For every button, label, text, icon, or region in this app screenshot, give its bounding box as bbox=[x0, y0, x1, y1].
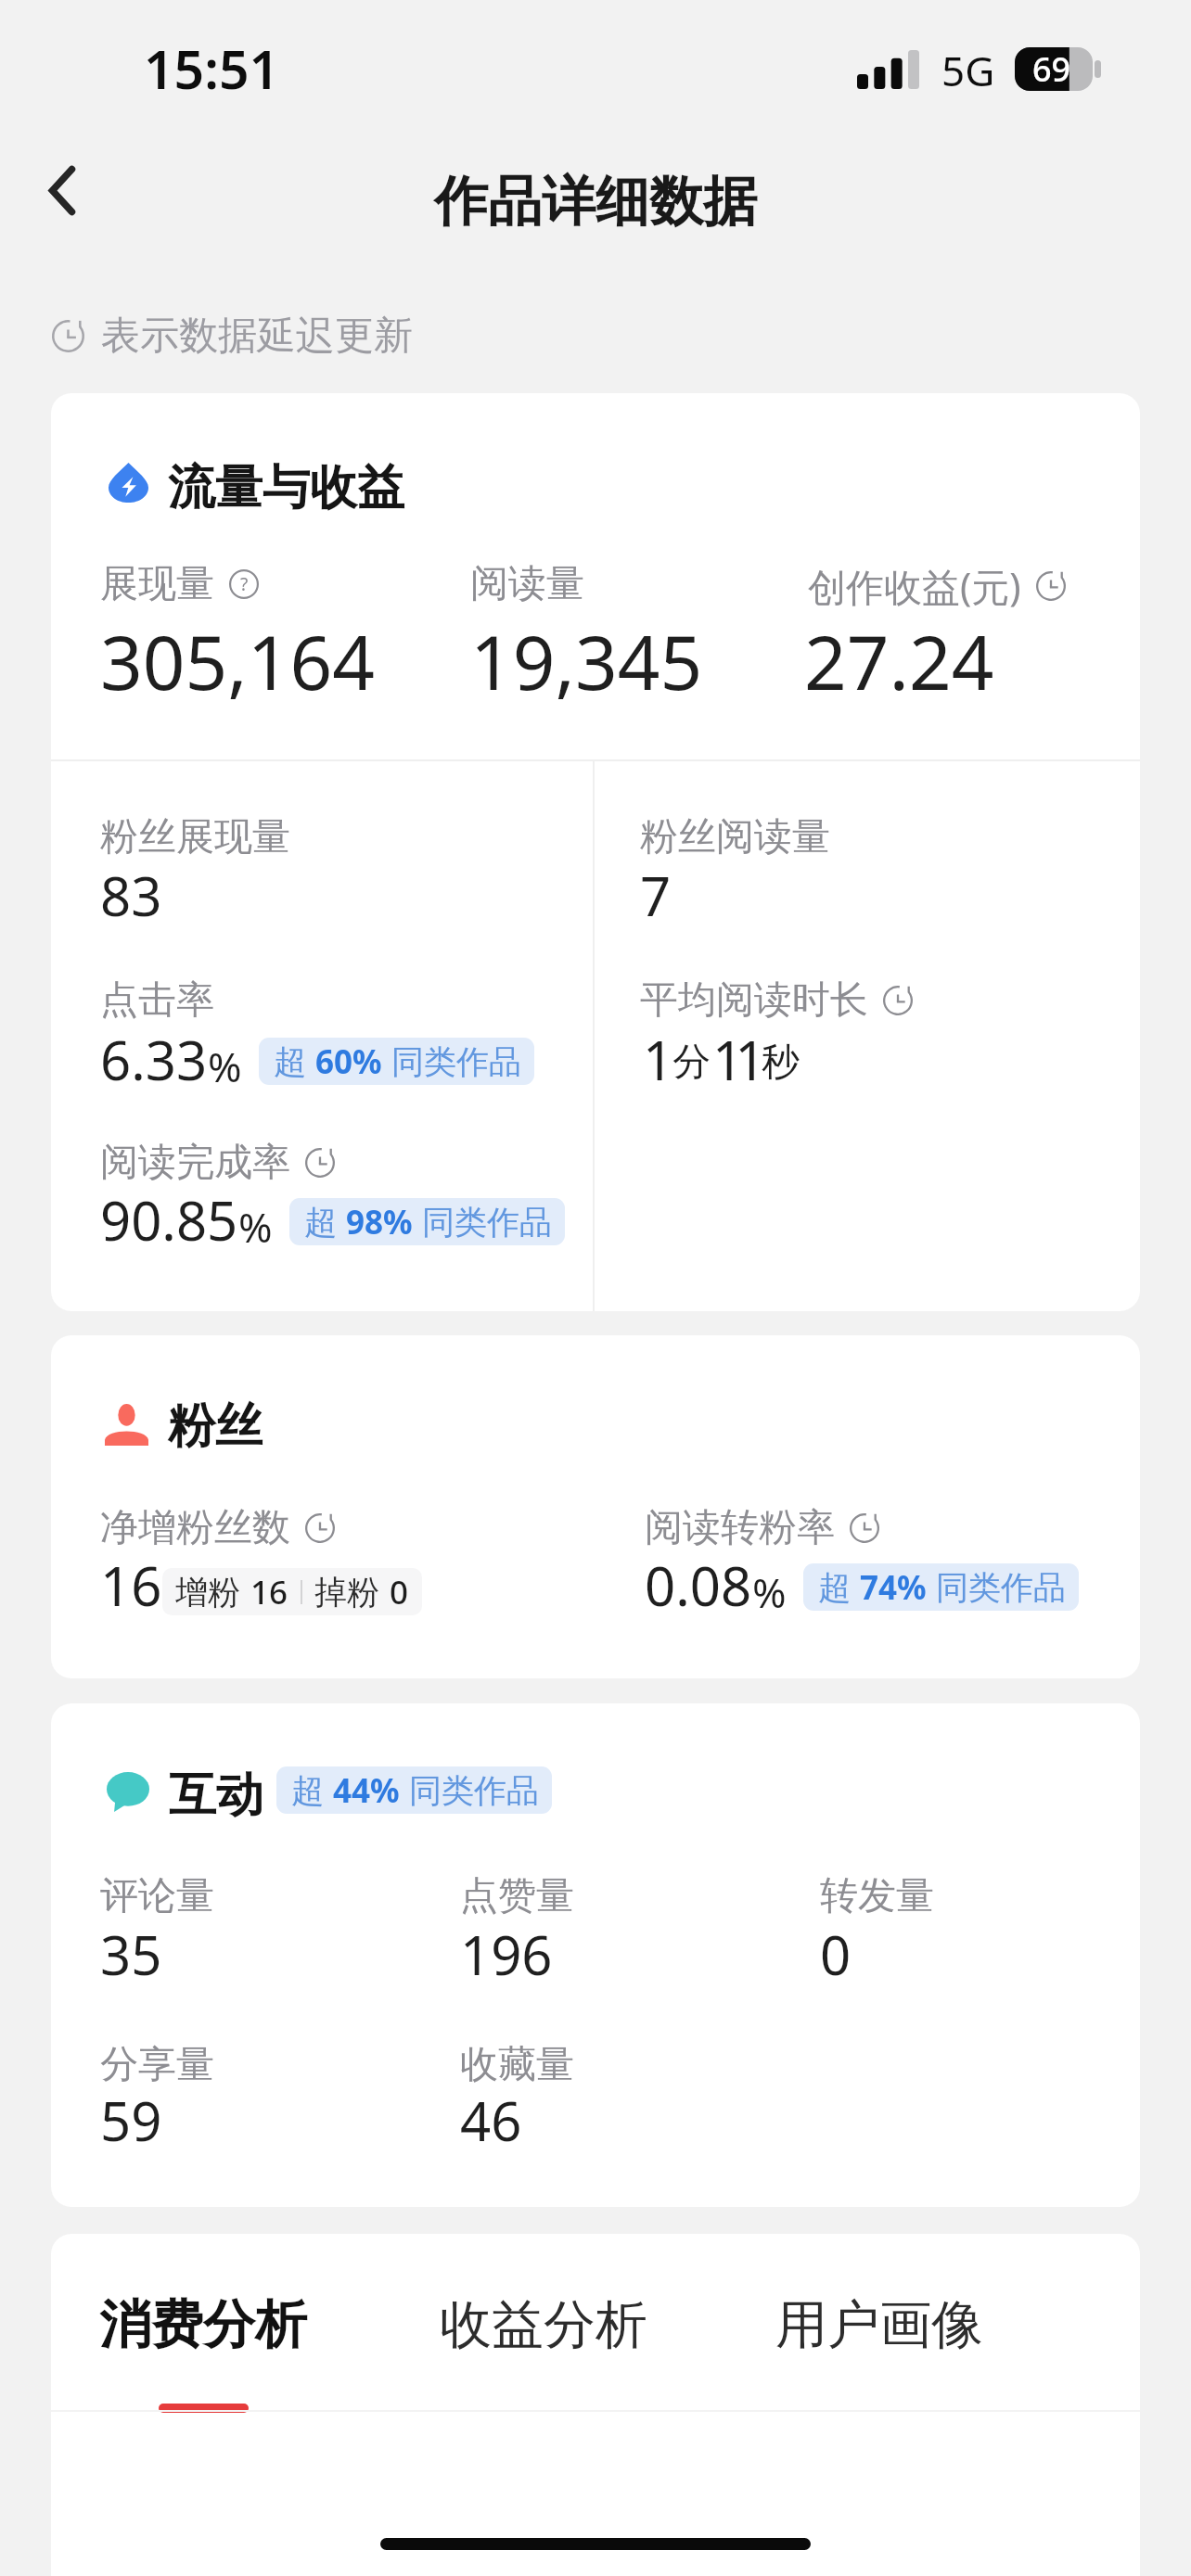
staticText: 59 bbox=[100, 2084, 162, 2157]
staticText: 平均阅读时长 bbox=[640, 976, 868, 1025]
staticText: 分享量 bbox=[100, 2041, 214, 2089]
staticText: 超 bbox=[304, 1202, 337, 1243]
staticText: 展现量 bbox=[100, 560, 214, 608]
button[interactable]: 消费分析 bbox=[99, 2292, 307, 2413]
staticText: 35 bbox=[100, 1918, 162, 1991]
staticText: 粉丝展现量 bbox=[100, 813, 290, 861]
staticText: 305,164 bbox=[100, 610, 375, 711]
staticText: 1 bbox=[643, 1023, 674, 1096]
staticText: 表示数据延迟更新 bbox=[101, 312, 413, 361]
staticText: 秒 bbox=[762, 1039, 800, 1087]
staticText: 净增粉丝数 bbox=[100, 1504, 290, 1552]
staticText: 0 bbox=[820, 1918, 852, 1991]
staticText: 评论量 bbox=[100, 1872, 214, 1920]
staticText: 同类作品 bbox=[391, 1041, 521, 1082]
staticText: 19,345 bbox=[470, 610, 703, 711]
staticText: 创作收益(元) bbox=[808, 560, 1021, 612]
staticText: 增粉 bbox=[175, 1572, 240, 1613]
staticText: 作品详细数据 bbox=[434, 168, 757, 236]
staticText: 69 bbox=[1032, 46, 1071, 90]
staticText: % bbox=[208, 1039, 242, 1094]
staticText: 同类作品 bbox=[422, 1202, 552, 1243]
staticText: 阅读完成率 bbox=[100, 1139, 290, 1187]
staticText: 粉丝 bbox=[168, 1396, 263, 1456]
staticText: 转发量 bbox=[820, 1872, 934, 1920]
staticText: 27.24 bbox=[804, 610, 994, 711]
staticText: 16 bbox=[250, 1570, 288, 1614]
staticText: 98% bbox=[346, 1200, 413, 1244]
staticText: 掉粉 bbox=[314, 1572, 379, 1613]
staticText: 44% bbox=[333, 1768, 400, 1813]
staticText: 11 bbox=[712, 1023, 758, 1096]
staticText: 196 bbox=[460, 1918, 553, 1991]
staticText: 粉丝阅读量 bbox=[640, 813, 830, 861]
staticText: 点击率 bbox=[100, 976, 214, 1025]
staticText: 90.85 bbox=[100, 1183, 238, 1256]
staticText: % bbox=[238, 1199, 273, 1255]
staticText: 5G bbox=[941, 43, 995, 98]
staticText: 超 bbox=[274, 1041, 306, 1082]
staticText: 0 bbox=[390, 1570, 409, 1614]
staticText: 15:51 bbox=[144, 32, 280, 105]
staticText: 0.08 bbox=[645, 1549, 752, 1622]
staticText: % bbox=[752, 1564, 787, 1620]
staticText: 同类作品 bbox=[936, 1567, 1066, 1608]
staticText: 阅读量 bbox=[470, 560, 584, 608]
staticText: 超 bbox=[291, 1770, 324, 1811]
staticText: 收益分析 bbox=[440, 2292, 647, 2358]
staticText: 收藏量 bbox=[460, 2041, 574, 2089]
staticText: 74% bbox=[860, 1565, 927, 1610]
staticText: 7 bbox=[640, 859, 672, 932]
staticText: 超 bbox=[818, 1567, 851, 1608]
staticText: 16 bbox=[100, 1549, 162, 1622]
staticText: 同类作品 bbox=[409, 1770, 539, 1811]
button[interactable]: 用户画像 bbox=[775, 2292, 983, 2413]
staticText: 46 bbox=[460, 2084, 522, 2157]
staticText: 流量与收益 bbox=[168, 458, 404, 517]
staticText: 互动 bbox=[169, 1766, 263, 1825]
staticText: 83 bbox=[100, 859, 162, 932]
staticText: 点赞量 bbox=[460, 1872, 574, 1920]
staticText: 消费分析 bbox=[99, 2292, 307, 2358]
button[interactable]: 收益分析 bbox=[440, 2292, 647, 2413]
staticText: 6.33 bbox=[100, 1023, 208, 1096]
button[interactable]: Back bbox=[0, 141, 115, 243]
staticText: ? bbox=[240, 571, 249, 595]
staticText: 60% bbox=[315, 1039, 382, 1084]
staticText: 分 bbox=[672, 1039, 711, 1087]
staticText: 用户画像 bbox=[775, 2292, 983, 2358]
staticText: 阅读转粉率 bbox=[645, 1504, 835, 1552]
